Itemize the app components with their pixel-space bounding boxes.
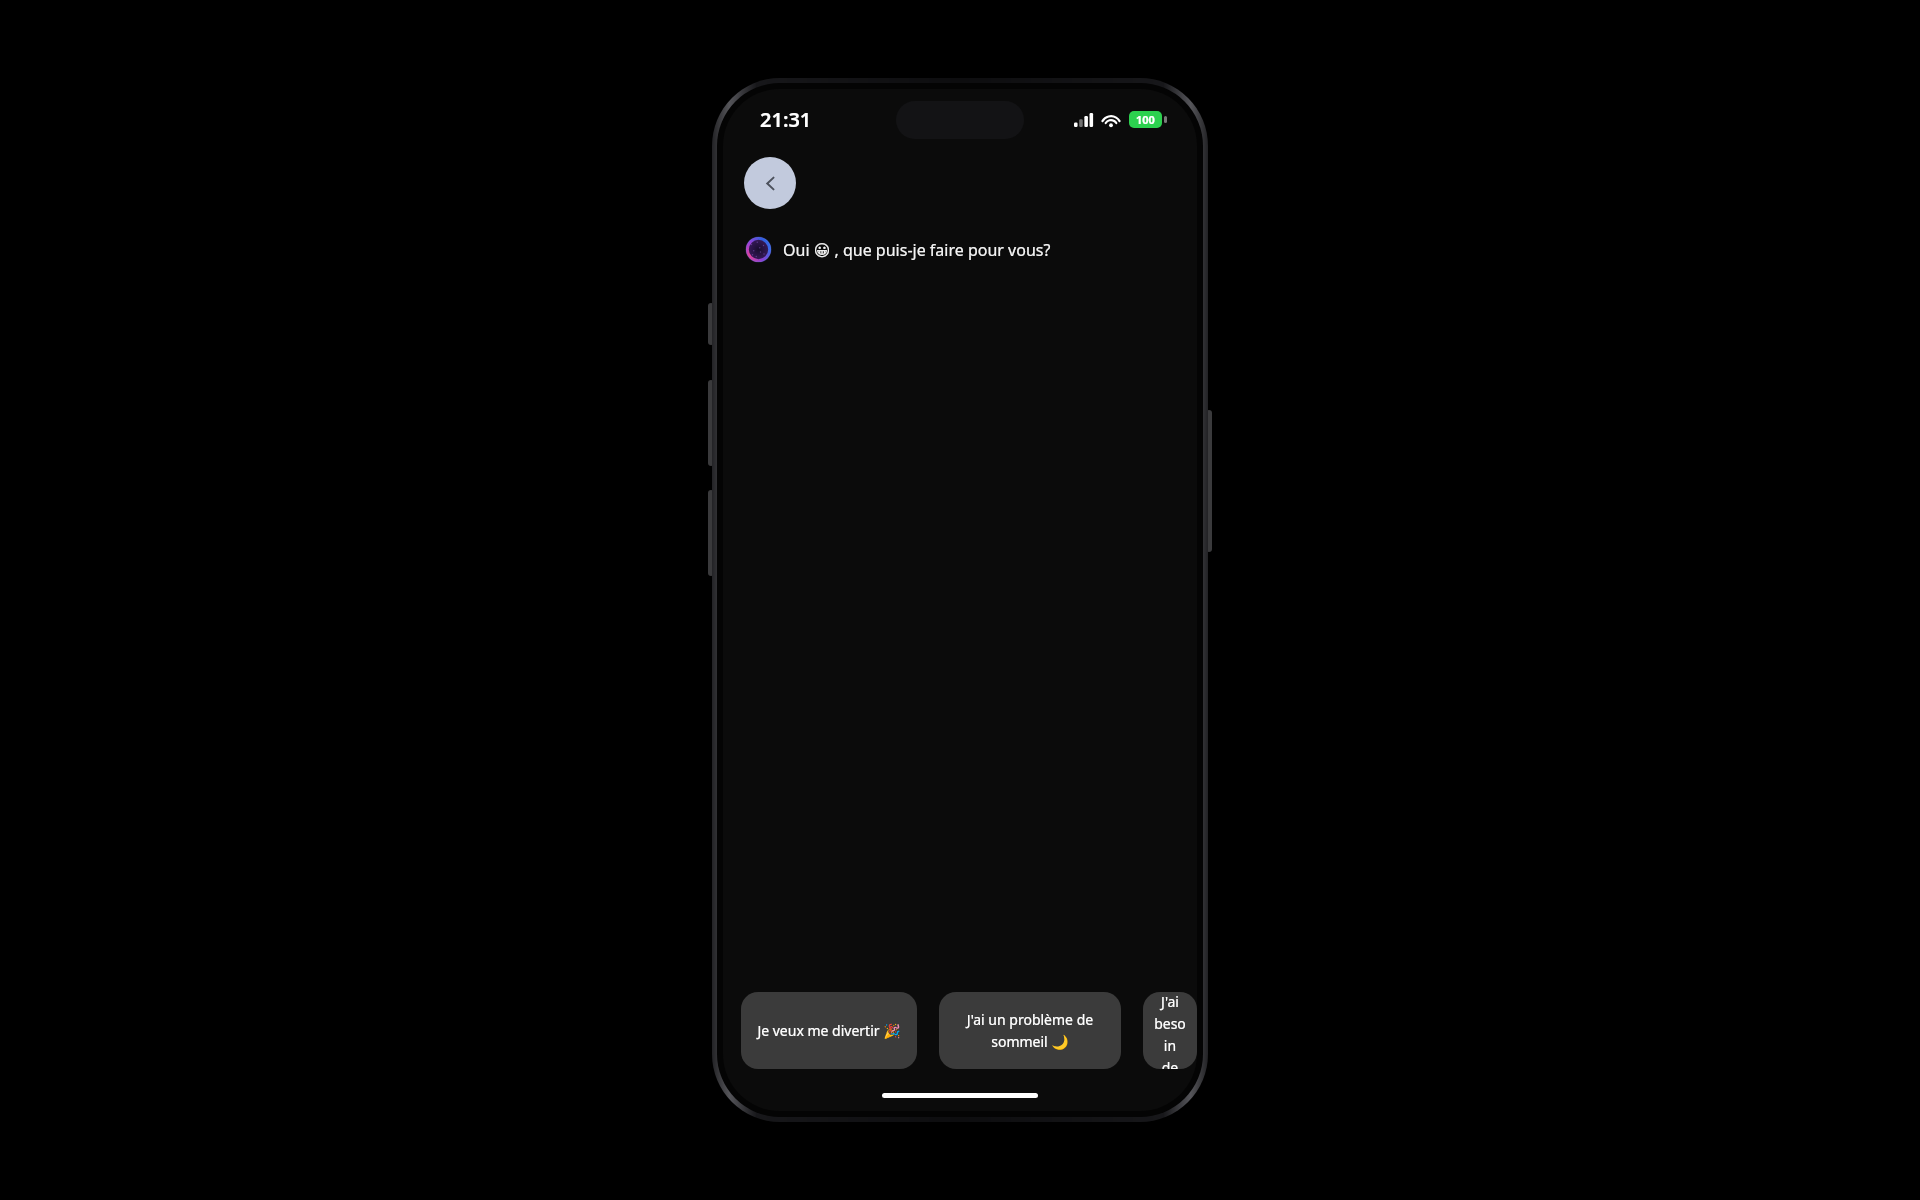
staticText: J'ai un problème de sommeil 🌙 bbox=[950, 1010, 1110, 1052]
button[interactable]: J'ai un problème de sommeil 🌙 bbox=[939, 992, 1121, 1069]
staticText: Oui 😀 , que puis-je faire pour vous? bbox=[783, 239, 1051, 261]
button[interactable]: Je veux me divertir 🎉 bbox=[741, 992, 917, 1069]
staticText: 21:31 bbox=[760, 106, 812, 133]
staticText: Je veux me divertir 🎉 bbox=[757, 1021, 901, 1040]
staticText: J'ai besoin de conseils bbox=[1154, 992, 1186, 1069]
button[interactable]: Back bbox=[744, 157, 796, 209]
button[interactable]: J'ai besoin de conseils bbox=[1143, 992, 1197, 1069]
staticText: 100 bbox=[1136, 112, 1155, 127]
